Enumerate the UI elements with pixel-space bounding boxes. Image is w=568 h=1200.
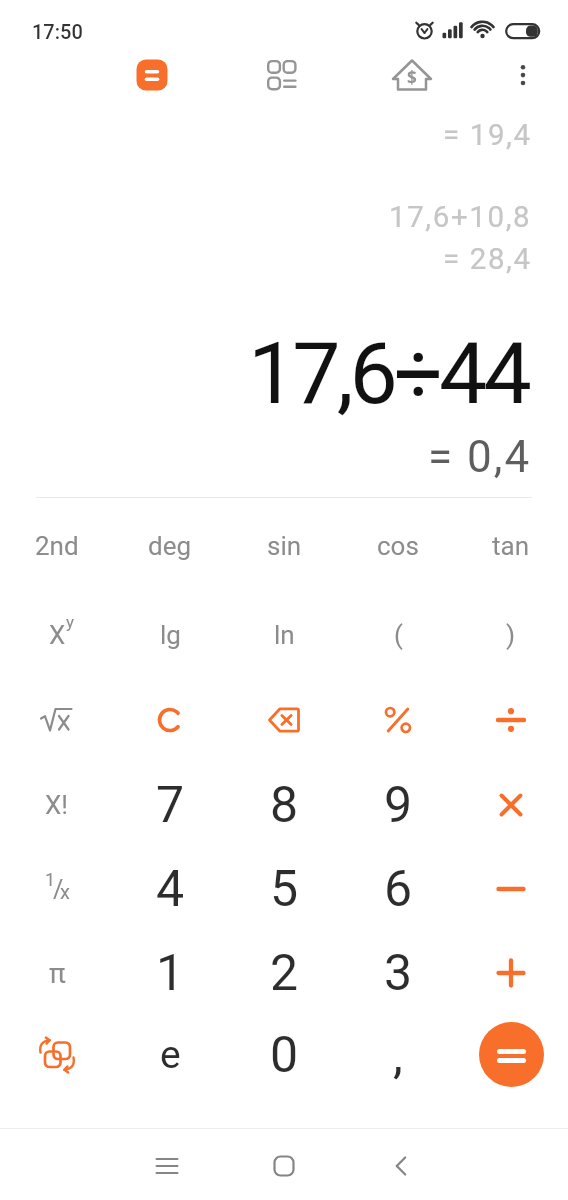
button[interactable] [346,681,450,759]
staticText: 0 [270,1026,299,1085]
button[interactable]: 7 [118,766,222,844]
button[interactable]: 2 [232,934,336,1012]
staticText: ( [394,620,403,650]
staticText: ) [506,620,516,650]
button[interactable] [5,681,109,759]
button[interactable]: 4 [118,850,222,928]
button[interactable]: e [118,1016,222,1094]
staticText: 17,6+10,8 [389,200,532,235]
button[interactable]: 2nd [5,507,109,585]
staticText: cos [377,531,419,561]
staticText: sin [267,531,302,561]
button[interactable]: cos [346,507,450,585]
staticText: lg [160,620,181,650]
button[interactable] [459,934,563,1012]
button[interactable]: 9 [346,766,450,844]
button[interactable] [232,681,336,759]
button[interactable]: 5 [232,850,336,928]
staticText: = 0,4 [428,431,532,483]
button[interactable]: 0 [232,1016,336,1094]
staticText: / [53,875,64,904]
staticText: X! [45,790,69,820]
button[interactable] [262,53,306,97]
button[interactable]: 8 [232,766,336,844]
staticText: X [49,620,66,650]
button[interactable]: 3 [346,934,450,1012]
staticText: $ [407,66,417,89]
staticText: tan [492,531,530,561]
button[interactable]: ( [346,596,450,674]
button[interactable]: sin [232,507,336,585]
staticText: 17,6÷44 [248,323,528,424]
staticText: π [49,957,66,990]
button[interactable] [254,1138,314,1194]
staticText: 8 [270,776,299,835]
staticText: 7 [156,776,185,835]
staticText: 2nd [35,531,79,561]
staticText: = 28,4 [443,242,532,277]
staticText: 1 [156,944,185,1003]
staticText: 4 [156,860,185,919]
staticText: = 19,4 [443,118,532,153]
button[interactable]: X [5,596,109,674]
button[interactable]: 6 [346,850,450,928]
button[interactable] [137,1138,197,1194]
staticText: x [60,880,70,903]
button[interactable]: lg [118,596,222,674]
button[interactable] [479,1022,544,1087]
staticText: y [66,612,75,632]
button[interactable] [459,766,563,844]
staticText: deg [148,531,192,561]
button[interactable]: ln [232,596,336,674]
button[interactable] [118,681,222,759]
button[interactable]: π [5,934,109,1012]
button[interactable]: deg [118,507,222,585]
button[interactable] [130,53,174,97]
staticText: 9 [384,776,413,835]
staticText: ln [274,620,295,650]
staticText: e [160,1032,181,1078]
button[interactable] [5,1016,109,1094]
button[interactable] [507,55,539,95]
staticText: 17:50 [32,20,83,43]
button[interactable] [459,850,563,928]
button[interactable]: ) [459,596,563,674]
button[interactable] [371,1138,431,1194]
staticText: 5 [270,860,299,919]
button[interactable] [459,681,563,759]
button[interactable]: 1 [5,850,109,928]
button[interactable]: X! [5,766,109,844]
staticText: 3 [384,944,413,1003]
staticText: 2 [270,944,299,1003]
button[interactable]: tan [459,507,563,585]
button[interactable]: 1 [118,934,222,1012]
staticText: , [393,1026,403,1085]
staticText: 6 [384,860,413,919]
staticText: 1 [45,869,56,890]
button[interactable]: $ [388,51,436,99]
button[interactable]: , [346,1016,450,1094]
